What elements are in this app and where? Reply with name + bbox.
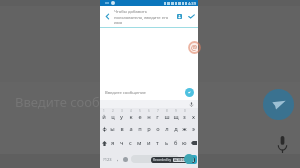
staticText: о xyxy=(156,125,160,133)
staticText: 0 xyxy=(184,109,186,113)
button[interactable]: Enter xyxy=(186,155,197,164)
button[interactable]: Emoji xyxy=(121,150,130,168)
staticText: ц xyxy=(111,113,115,121)
staticText: 2 xyxy=(112,109,114,113)
button[interactable]: а xyxy=(126,122,135,136)
staticText: л xyxy=(165,125,169,133)
button[interactable]: 1 xyxy=(100,108,108,122)
staticText: в xyxy=(120,125,124,133)
staticText: т xyxy=(156,139,159,147)
staticText: 4 xyxy=(130,109,132,113)
staticText: 8 xyxy=(166,109,168,113)
staticText: д xyxy=(174,125,178,133)
button[interactable]: Done xyxy=(185,6,198,27)
staticText: г xyxy=(156,113,159,121)
staticText: 4:39 xyxy=(188,1,196,6)
staticText: б xyxy=(174,139,178,147)
button[interactable]: 6 xyxy=(144,108,153,122)
staticText: ш xyxy=(164,113,170,121)
staticText: и xyxy=(147,139,151,147)
button[interactable]: 9 xyxy=(171,108,180,122)
button[interactable]: 3 xyxy=(117,108,126,122)
staticText: . xyxy=(182,156,184,163)
staticText: 7 xyxy=(157,109,159,113)
button[interactable]: ы xyxy=(108,122,117,136)
button[interactable]: Shift xyxy=(100,136,109,150)
staticText: ч xyxy=(120,139,124,147)
staticText: к xyxy=(129,113,133,121)
button[interactable]: 2 xyxy=(108,108,117,122)
staticText: Введите сооби xyxy=(15,93,108,111)
staticText: ж xyxy=(182,125,187,133)
staticText: с xyxy=(129,139,132,147)
button[interactable]: б xyxy=(171,136,180,150)
staticText: а xyxy=(129,125,133,133)
staticText: 9 xyxy=(175,109,177,113)
button[interactable]: о xyxy=(153,122,162,136)
staticText: ф xyxy=(102,125,107,133)
staticText: у xyxy=(120,113,123,121)
button[interactable]: я xyxy=(109,136,117,150)
button[interactable]: , xyxy=(114,150,121,168)
staticText: э xyxy=(192,125,195,133)
staticText: 6 xyxy=(148,109,150,113)
button[interactable]: с xyxy=(126,136,135,150)
button[interactable]: Send xyxy=(184,154,194,164)
button[interactable]: в xyxy=(117,122,126,136)
staticText: 5 xyxy=(139,109,141,113)
staticText: , xyxy=(117,156,119,163)
button[interactable]: э xyxy=(189,122,198,136)
staticText: @ xyxy=(191,43,198,53)
staticText: х xyxy=(192,113,195,121)
button[interactable]: Space xyxy=(131,155,179,163)
button[interactable]: Contacts xyxy=(174,6,185,27)
staticText: щ xyxy=(173,113,179,121)
staticText: п xyxy=(138,125,142,133)
staticText: Чтобы добавить пользователя, введите его… xyxy=(114,9,170,25)
button[interactable]: ч xyxy=(117,136,126,150)
button[interactable]: 4 xyxy=(126,108,135,122)
staticText: р xyxy=(147,125,151,133)
button[interactable]: ж xyxy=(180,122,189,136)
button[interactable]: ь xyxy=(162,136,171,150)
button[interactable]: т xyxy=(153,136,162,150)
button[interactable]: . xyxy=(180,150,186,168)
button[interactable]: п xyxy=(135,122,144,136)
staticText: ы xyxy=(110,125,115,133)
button[interactable]: м xyxy=(135,136,144,150)
staticText: ь xyxy=(165,139,169,147)
button[interactable]: Back xyxy=(100,6,114,27)
button[interactable]: и xyxy=(144,136,153,150)
staticText: 1 xyxy=(103,109,105,113)
staticText: AZ RECORDER xyxy=(174,158,193,162)
button[interactable]: 8 xyxy=(162,108,171,122)
button[interactable]: 5 xyxy=(135,108,144,122)
button[interactable]: 0 xyxy=(180,108,189,122)
button[interactable]: х xyxy=(189,108,198,122)
staticText: н xyxy=(147,113,151,121)
button[interactable]: л xyxy=(162,122,171,136)
button[interactable]: Send xyxy=(185,88,194,97)
button[interactable]: ?123 xyxy=(100,150,114,168)
button[interactable]: Backspace xyxy=(189,136,198,150)
staticText: я xyxy=(111,139,115,147)
button[interactable]: д xyxy=(171,122,180,136)
staticText: ?123 xyxy=(103,157,112,162)
staticText: Введите сообщение xyxy=(105,90,146,96)
staticText: м xyxy=(137,139,142,147)
staticText: ю xyxy=(182,139,187,147)
button[interactable]: ф xyxy=(100,122,108,136)
staticText: й xyxy=(102,113,106,121)
staticText: 3 xyxy=(121,109,123,113)
button[interactable]: р xyxy=(144,122,153,136)
staticText: з xyxy=(183,113,186,121)
staticText: е xyxy=(138,113,142,121)
staticText: Recorded by xyxy=(153,158,172,162)
button[interactable]: ю xyxy=(180,136,189,150)
button[interactable]: 7 xyxy=(153,108,162,122)
